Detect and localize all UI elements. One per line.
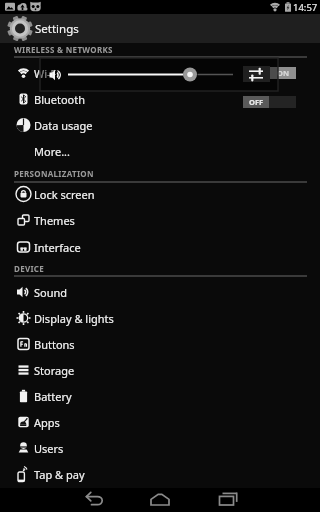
- button[interactable]: More...: [0, 138, 320, 164]
- button[interactable]: ON: [243, 67, 296, 79]
- staticText: 14:57: [293, 1, 318, 14]
- staticText: Settings: [35, 21, 79, 37]
- button[interactable]: Tap & pay: [0, 461, 320, 487]
- staticText: PERSONALIZATION: [14, 168, 94, 179]
- button[interactable]: [144, 488, 176, 512]
- button[interactable]: Battery: [0, 383, 320, 409]
- button[interactable]: Storage: [0, 357, 320, 383]
- button[interactable]: OFF: [243, 96, 296, 108]
- button[interactable]: Wi-Fi: [0, 60, 320, 86]
- button[interactable]: Display & lights: [0, 305, 320, 331]
- button[interactable]: Data usage: [0, 112, 320, 138]
- button[interactable]: [212, 488, 244, 512]
- staticText: More...: [34, 144, 71, 159]
- button[interactable]: Themes: [0, 207, 320, 233]
- button[interactable]: Buttons: [0, 331, 320, 357]
- button[interactable]: [76, 488, 108, 512]
- staticText: Apps: [34, 415, 60, 430]
- staticText: Display & lights: [34, 311, 114, 326]
- staticText: DEVICE: [14, 263, 45, 274]
- staticText: Battery: [34, 389, 72, 404]
- staticText: ON: [277, 68, 290, 78]
- button[interactable]: Users: [0, 435, 320, 461]
- staticText: Bluetooth: [34, 92, 86, 107]
- button[interactable]: [243, 66, 270, 82]
- staticText: OFF: [249, 97, 264, 107]
- staticText: WIRELESS & NETWORKS: [14, 44, 113, 55]
- staticText: Wi-Fi: [34, 66, 60, 81]
- staticText: Users: [34, 441, 64, 456]
- button[interactable]: Interface: [0, 234, 320, 260]
- staticText: Themes: [34, 213, 75, 228]
- button[interactable]: Lock screen: [0, 181, 320, 207]
- button[interactable]: Apps: [0, 409, 320, 435]
- staticText: Data usage: [34, 118, 93, 133]
- staticText: Tap & pay: [34, 467, 85, 482]
- staticText: Buttons: [34, 337, 75, 352]
- staticText: Lock screen: [34, 187, 95, 202]
- staticText: Storage: [34, 363, 75, 378]
- button[interactable]: Settings: [0, 14, 320, 43]
- button[interactable]: Sound: [0, 279, 320, 305]
- button[interactable]: Bluetooth: [0, 86, 320, 112]
- staticText: Interface: [34, 240, 81, 255]
- staticText: Sound: [34, 285, 68, 300]
